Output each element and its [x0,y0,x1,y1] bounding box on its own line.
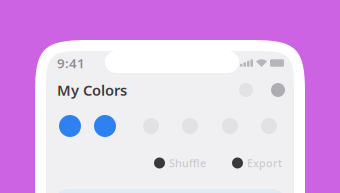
button[interactable]: More options [271,83,285,97]
button[interactable]: Search [239,83,253,97]
staticText: Export [247,156,282,170]
button[interactable]: Shuffle [154,156,206,170]
button[interactable]: Colour swatch [261,118,277,134]
button[interactable]: Export [232,156,282,170]
button[interactable]: Light blue [94,115,116,137]
button[interactable]: Colour swatch [182,118,198,134]
button[interactable]: Colour swatch [222,118,238,134]
staticText: 9:41 [57,54,85,72]
button[interactable]: Colour swatch [143,118,159,134]
staticText: Shuffle [169,156,206,170]
staticText: My Colors [57,80,127,100]
button[interactable]: Blue [59,115,81,137]
